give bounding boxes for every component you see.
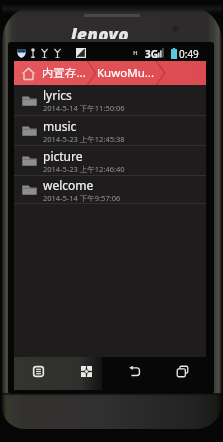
staticText: H <box>133 49 138 57</box>
staticText: 2014-5-14 下午11:50:06 <box>43 103 125 113</box>
button[interactable]: 内置存... <box>42 65 86 81</box>
staticText: lenovo <box>71 23 129 39</box>
button[interactable]: music <box>14 116 206 146</box>
button[interactable]: Menu <box>14 357 62 390</box>
staticText: 3G <box>145 47 158 61</box>
button[interactable]: Home <box>14 61 42 85</box>
staticText: 内置存... <box>42 65 86 81</box>
button[interactable]: picture <box>14 146 206 176</box>
staticText: KuwoMu... <box>97 65 155 81</box>
button[interactable]: Home <box>62 357 110 390</box>
staticText: 2014-5-23 上午12:45:38 <box>43 134 125 144</box>
staticText: picture <box>43 148 83 164</box>
button[interactable]: KuwoMu... <box>97 65 155 81</box>
button[interactable]: welcome <box>14 176 206 204</box>
button[interactable]: Recent apps <box>158 357 206 390</box>
staticText: 0:49 <box>179 47 199 61</box>
button[interactable]: lyrics <box>14 85 206 116</box>
button[interactable]: Back <box>110 357 158 390</box>
staticText: 2014-5-14 下午9:57:06 <box>43 193 121 203</box>
staticText: lyrics <box>43 87 72 103</box>
staticText: music <box>43 118 77 134</box>
staticText: welcome <box>43 177 94 193</box>
staticText: 2014-5-23 上午12:46:40 <box>43 164 125 174</box>
